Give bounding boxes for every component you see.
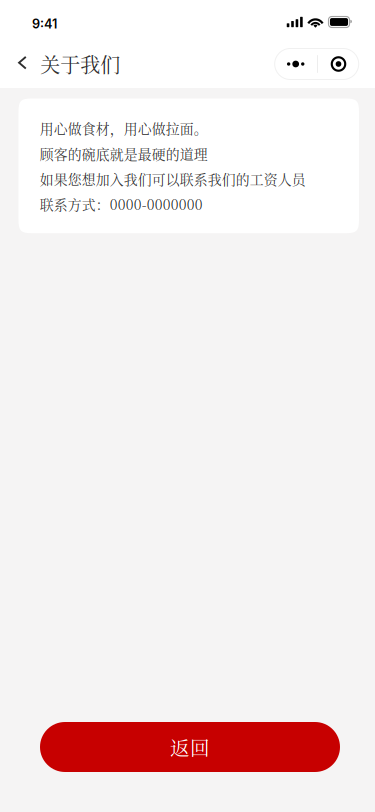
staticText: 9:41 — [32, 16, 57, 32]
button[interactable]: More — [274, 48, 317, 79]
button[interactable]: Close — [318, 48, 359, 79]
button[interactable]: Back — [18, 44, 40, 84]
staticText: 顾客的碗底就是最硬的道理 — [40, 143, 208, 163]
staticText: 用心做食材，用心做拉面。 — [40, 118, 208, 138]
staticText: 关于我们 — [40, 50, 120, 78]
staticText: 如果您想加入我们可以联系我们的工资人员 — [40, 169, 306, 189]
staticText: 返回 — [170, 733, 210, 761]
staticText: 联系方式：0000-0000000 — [40, 194, 203, 214]
button[interactable]: 返回 — [40, 722, 340, 772]
